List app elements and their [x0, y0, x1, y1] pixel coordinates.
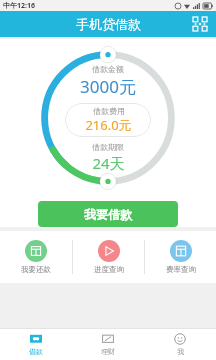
button[interactable]: Scan QR code [192, 16, 208, 32]
button[interactable]: 进度查询 [73, 240, 144, 274]
staticText: 借款费用 [93, 106, 125, 116]
staticText: 中午12:16 [3, 1, 35, 11]
staticText: 进度查询 [94, 265, 124, 274]
staticText: 我 [177, 347, 184, 356]
staticText: 手机贷借款 [76, 16, 141, 32]
staticText: 费率查询 [166, 265, 196, 274]
staticText: 借款金额 [92, 64, 124, 74]
staticText: 我要还款 [21, 265, 51, 274]
button[interactable]: 我 [144, 333, 216, 356]
button[interactable]: 我要借款 [38, 201, 178, 227]
button[interactable]: 我要还款 [0, 240, 72, 274]
button[interactable]: 费率查询 [145, 240, 216, 274]
staticText: 24天 [92, 153, 125, 173]
button[interactable]: 理财 [72, 333, 144, 356]
staticText: 3000元 [80, 75, 136, 98]
staticText: 我要借款 [84, 207, 132, 222]
staticText: 借款期限 [92, 142, 124, 152]
staticText: 理财 [101, 347, 115, 356]
button[interactable]: 借款 [0, 333, 72, 356]
staticText: 216.0元 [85, 116, 132, 134]
staticText: 借款 [29, 347, 43, 356]
